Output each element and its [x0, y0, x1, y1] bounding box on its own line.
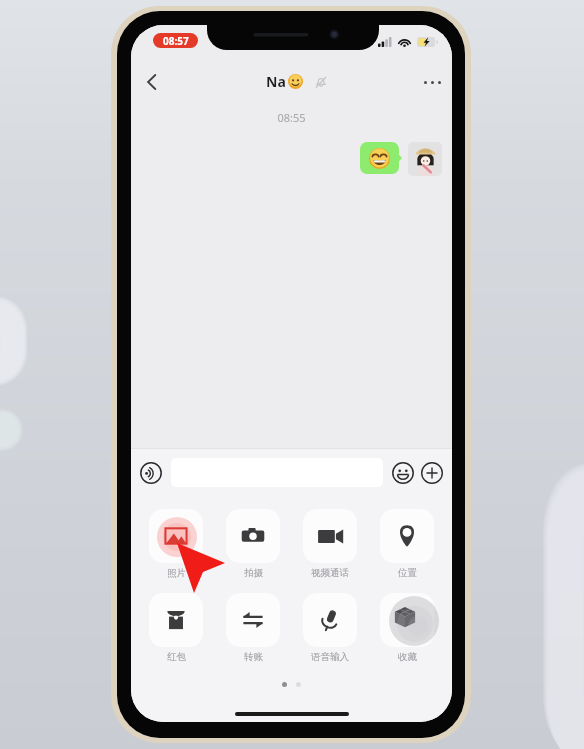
button[interactable]: 红包 [149, 593, 203, 663]
button[interactable]: Emoji [392, 462, 414, 484]
staticText: 转账 [244, 651, 263, 663]
button[interactable]: 照片 [149, 509, 203, 579]
staticText: 照片 [167, 567, 186, 579]
button[interactable]: 转账 [226, 593, 280, 663]
staticText: Na [266, 72, 286, 91]
staticText: 08:57 [163, 34, 189, 48]
button[interactable]: 收藏 [380, 593, 434, 663]
button[interactable]: 拍摄 [226, 509, 280, 579]
button[interactable]: Voice input [140, 462, 162, 484]
button[interactable]: 视频通话 [303, 509, 357, 579]
staticText: 08:55 [131, 110, 452, 125]
staticText: 红包 [167, 651, 186, 663]
button[interactable]: More functions [421, 462, 443, 484]
staticText: 收藏 [398, 651, 417, 663]
button[interactable]: More options [412, 62, 452, 102]
staticText: 语音输入 [311, 651, 349, 663]
button[interactable]: Sticker message [360, 142, 399, 174]
staticText: 视频通话 [311, 567, 349, 579]
staticText: 拍摄 [244, 567, 263, 579]
staticText: 位置 [398, 567, 417, 579]
button[interactable]: 语音输入 [303, 593, 357, 663]
button[interactable]: Avatar [408, 142, 442, 176]
button[interactable]: Back [131, 62, 171, 102]
button[interactable]: 位置 [380, 509, 434, 579]
